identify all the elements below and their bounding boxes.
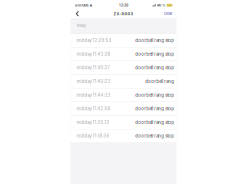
button[interactable]: midday 11:44:33 (70, 88, 176, 102)
staticText: clear (164, 11, 172, 16)
staticText: 12:29 (119, 3, 128, 7)
staticText: midday 11:18:36 (76, 133, 109, 139)
staticText (88, 3, 89, 7)
button[interactable]: midday 11:25:12 (70, 116, 176, 129)
staticText: midday 11:40:37 (76, 65, 109, 70)
button[interactable]: Back (73, 9, 82, 18)
button[interactable]: midday 11:43:38 (70, 47, 176, 61)
staticText: doorbell rang stop (135, 38, 174, 43)
staticText: midday 11:42:58 (76, 106, 110, 111)
staticText: doorbell rang (145, 79, 174, 84)
staticText (166, 3, 167, 7)
staticText: doorbell rang stop (135, 120, 174, 125)
staticText: today (77, 23, 86, 28)
staticText: doorbell rang stop (135, 106, 174, 111)
button[interactable]: midday 11:40:23 (70, 75, 176, 88)
staticText: doorbell rang stop (135, 92, 174, 98)
staticText: doorbell rang stop (135, 133, 174, 139)
staticText: ZX-9003 (113, 11, 133, 16)
staticText: midday 12:29:53 (76, 38, 111, 43)
staticText: midday 11:40:23 (76, 79, 110, 84)
staticText: 46 % (157, 3, 166, 7)
staticText: midday 11:43:38 (76, 52, 110, 57)
staticText: midday 11:44:33 (76, 92, 110, 98)
button[interactable]: midday 12:29:53 (70, 34, 176, 47)
button[interactable]: midday 11:42:58 (70, 102, 176, 115)
staticText: midday 11:25:12 (76, 120, 109, 125)
staticText: Glu lubs (74, 3, 88, 7)
button[interactable]: midday 11:40:37 (70, 61, 176, 74)
staticText: doorbell rang stop (135, 52, 174, 57)
staticText: doorbell rang stop (135, 65, 174, 70)
button[interactable]: midday 11:18:36 (70, 129, 176, 143)
button[interactable]: clear (164, 9, 172, 18)
